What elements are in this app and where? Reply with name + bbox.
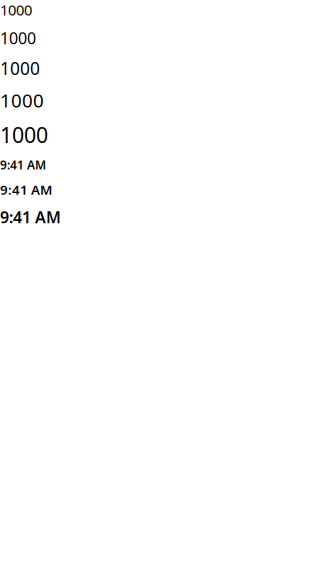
staticText: 9:41 AM: [0, 181, 52, 198]
staticText: 1000: [0, 27, 36, 49]
staticText: 9:41 AM: [0, 157, 46, 173]
staticText: 1000: [0, 57, 40, 80]
staticText: 1000: [0, 120, 48, 149]
staticText: 1000: [0, 0, 32, 19]
staticText: 9:41 AM: [0, 206, 61, 228]
staticText: 1000: [0, 88, 44, 112]
